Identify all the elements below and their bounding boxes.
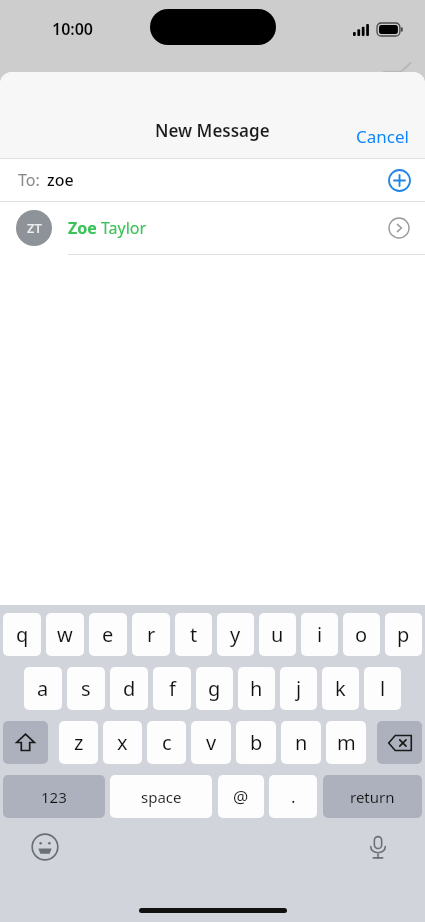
button[interactable]: s — [67, 667, 105, 710]
button[interactable]: y — [217, 613, 254, 656]
staticText: space — [141, 787, 182, 807]
button[interactable]: m — [326, 721, 366, 764]
staticText: j — [296, 675, 302, 702]
button[interactable]: Cancel — [340, 115, 425, 158]
button[interactable]: return — [323, 775, 422, 818]
staticText: a — [37, 675, 49, 702]
button[interactable]: w — [46, 613, 84, 656]
staticText: @ — [233, 785, 249, 808]
staticText: 123 — [41, 787, 67, 807]
staticText: k — [335, 675, 346, 702]
button[interactable]: Shift — [3, 721, 48, 764]
button[interactable]: t — [175, 613, 212, 656]
staticText: g — [208, 675, 221, 702]
button[interactable]: To: — [0, 159, 425, 201]
button[interactable]: Dictation — [361, 830, 395, 864]
button[interactable]: x — [103, 721, 142, 764]
staticText: w — [57, 621, 73, 648]
button[interactable]: a — [24, 667, 62, 710]
staticText: z — [74, 729, 84, 756]
button[interactable]: 123 — [3, 775, 105, 818]
staticText: i — [317, 621, 323, 648]
button[interactable]: c — [147, 721, 186, 764]
staticText: p — [397, 621, 410, 648]
staticText: Zoe Taylor — [68, 217, 147, 239]
staticText: r — [147, 621, 156, 648]
staticText: u — [271, 621, 284, 648]
staticText: return — [350, 787, 395, 807]
button[interactable]: Emoji — [28, 830, 62, 864]
staticText: New Message — [155, 119, 270, 142]
button[interactable]: @ — [218, 775, 264, 818]
staticText: Cancel — [356, 125, 409, 148]
button[interactable]: p — [385, 613, 422, 656]
button[interactable]: j — [280, 667, 317, 710]
button[interactable]: v — [191, 721, 231, 764]
button[interactable]: n — [281, 721, 321, 764]
staticText: To: — [18, 169, 40, 191]
button[interactable]: o — [343, 613, 380, 656]
staticText: h — [250, 675, 263, 702]
staticText: q — [16, 621, 29, 648]
staticText: f — [169, 675, 176, 702]
button[interactable]: i — [301, 613, 338, 656]
button[interactable]: u — [259, 613, 296, 656]
button[interactable]: d — [110, 667, 148, 710]
staticText: o — [355, 621, 368, 648]
staticText: t — [190, 621, 198, 648]
button[interactable]: z — [59, 721, 98, 764]
staticText: v — [206, 729, 217, 756]
button[interactable]: ZT — [0, 202, 425, 254]
button[interactable]: space — [110, 775, 212, 818]
button[interactable]: h — [238, 667, 275, 710]
staticText: d — [123, 675, 136, 702]
staticText: ZT — [27, 219, 42, 237]
staticText: . — [291, 785, 296, 808]
staticText: n — [295, 729, 308, 756]
button[interactable]: b — [236, 721, 276, 764]
button[interactable]: e — [89, 613, 127, 656]
staticText: c — [162, 729, 172, 756]
button[interactable]: f — [153, 667, 191, 710]
staticText: m — [337, 729, 356, 756]
staticText: b — [250, 729, 263, 756]
staticText: x — [117, 729, 128, 756]
staticText: s — [81, 675, 91, 702]
button[interactable]: k — [322, 667, 359, 710]
staticText: e — [102, 621, 114, 648]
button[interactable]: Contact details — [377, 206, 421, 250]
staticText: y — [230, 621, 241, 648]
button[interactable]: Backspace — [377, 721, 422, 764]
button[interactable]: l — [364, 667, 401, 710]
staticText: zoe — [47, 169, 74, 191]
button[interactable]: r — [132, 613, 170, 656]
button[interactable]: g — [196, 667, 233, 710]
button[interactable]: . — [269, 775, 317, 818]
staticText: l — [380, 675, 386, 702]
staticText: 10:00 — [52, 18, 94, 40]
button[interactable]: q — [3, 613, 41, 656]
button[interactable]: Add contact — [377, 159, 421, 201]
